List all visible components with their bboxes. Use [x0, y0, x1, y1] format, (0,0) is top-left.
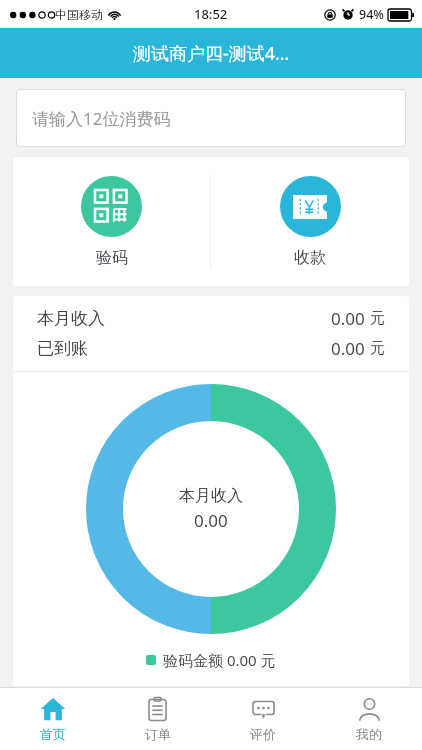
other: 首页 — [40, 696, 66, 722]
staticText: 0.00 — [331, 337, 365, 360]
button[interactable]: 评价 — [210, 688, 316, 750]
button[interactable]: 请输入12位消费码 — [16, 89, 406, 147]
staticText: 0.00 — [331, 307, 365, 330]
staticText: 首页 — [40, 726, 66, 742]
staticText: 测试商户四-测试4… — [133, 41, 290, 66]
other: 订单 — [145, 697, 170, 722]
staticText: 本月收入 — [179, 486, 243, 506]
button[interactable]: 首页 — [0, 688, 105, 750]
staticText: 中国移动 — [55, 7, 103, 22]
staticText: 我的 — [356, 726, 382, 742]
button[interactable]: 订单 — [105, 688, 210, 750]
staticText: 收款 — [294, 248, 326, 268]
button[interactable]: 验码 — [13, 157, 210, 286]
other: 我的 — [357, 697, 382, 722]
staticText: 94% — [359, 6, 384, 23]
staticText: 已到账 — [37, 338, 88, 359]
staticText: 验码金额 0.00 元 — [163, 650, 276, 670]
staticText: 本月收入 — [37, 308, 105, 329]
staticText: 元 — [370, 339, 385, 358]
button[interactable]: 我的 — [316, 688, 422, 750]
staticText: 订单 — [145, 726, 171, 742]
staticText: 0.00 — [194, 509, 228, 532]
staticText: 元 — [370, 309, 385, 328]
staticText: 18:52 — [194, 5, 228, 23]
button[interactable]: 收款 — [211, 157, 409, 286]
staticText: 请输入12位消费码 — [32, 107, 171, 130]
staticText: 评价 — [250, 726, 276, 742]
staticText: 验码 — [96, 248, 128, 268]
other: 评价 — [251, 697, 276, 722]
